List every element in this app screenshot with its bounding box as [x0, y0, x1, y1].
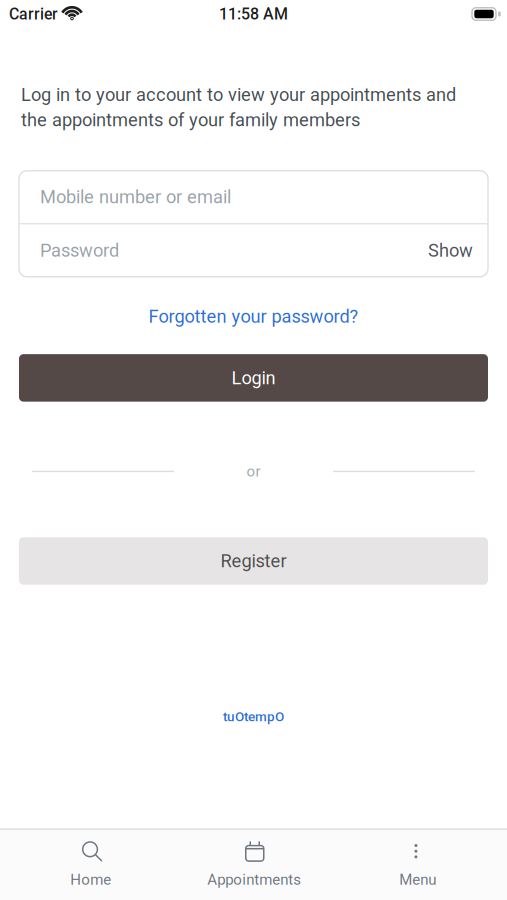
staticText: Appointments [207, 871, 301, 888]
staticText: Password [40, 240, 119, 261]
button[interactable]: Register [19, 537, 488, 585]
staticText: Log in to your account to view your appo… [21, 84, 456, 105]
staticText: Register [220, 550, 286, 572]
staticText: Forgotten your password? [148, 306, 358, 327]
staticText: or [246, 463, 260, 480]
button[interactable]: Forgotten your password? [148, 306, 358, 327]
staticText: Mobile number or email [40, 186, 231, 208]
staticText: the appointments of your family members [21, 109, 360, 131]
button[interactable]: Password [19, 224, 428, 277]
staticText: Login [231, 367, 275, 389]
staticText: Carrier [9, 5, 58, 23]
staticText: Menu [399, 871, 436, 888]
button[interactable]: Home [9, 836, 172, 888]
button[interactable]: Show [428, 224, 488, 277]
button[interactable]: Appointments [172, 836, 336, 888]
staticText: Home [70, 871, 111, 888]
button[interactable]: Mobile number or email [19, 171, 488, 223]
button[interactable]: tuOtempO [223, 709, 284, 724]
button[interactable]: Menu [336, 836, 499, 888]
staticText: 11:58 AM [219, 5, 288, 23]
button[interactable]: Login [19, 354, 488, 402]
staticText: Show [428, 240, 473, 261]
staticText: tuOtempO [223, 709, 284, 724]
